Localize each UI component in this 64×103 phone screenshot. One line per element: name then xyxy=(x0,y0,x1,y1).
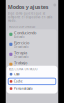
button[interactable]: Terapia xyxy=(7,49,57,59)
staticText: Terapia xyxy=(14,50,27,55)
staticText: Desactivado xyxy=(14,55,29,59)
staticText: Ejercicio xyxy=(14,40,29,45)
button[interactable]: Trabajo xyxy=(7,59,57,69)
staticText: Modos y ajustes xyxy=(8,3,49,11)
staticText: Desactivado xyxy=(14,45,29,49)
staticText: Desactivado xyxy=(14,65,29,69)
button[interactable]: Casa xyxy=(8,71,56,77)
staticText: Coche xyxy=(14,80,23,83)
button[interactable]: Coche xyxy=(8,78,56,85)
staticText: Trabajo xyxy=(14,60,27,65)
staticText: Activado xyxy=(14,35,25,39)
staticText: MODOS DISPONIBLES xyxy=(9,25,35,28)
staticText: SELECCIONA UN MODO xyxy=(9,67,38,71)
button[interactable]: Ejercicio xyxy=(7,39,57,49)
button[interactable]: Ayuda xyxy=(53,3,56,6)
staticText: Conduciendo xyxy=(14,30,36,35)
staticText: Elige cómo quieres que se comporte el di… xyxy=(8,12,52,22)
button[interactable]: Conduciendo xyxy=(7,29,57,39)
button[interactable]: Personalizado xyxy=(8,85,56,92)
staticText: Casa xyxy=(14,72,19,76)
staticText: Personalizado xyxy=(14,87,33,90)
